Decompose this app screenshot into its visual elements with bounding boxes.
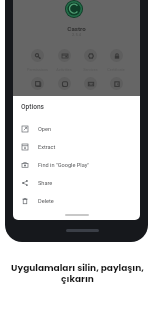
button[interactable]: Delete <box>13 192 140 210</box>
staticText: Activities <box>56 67 72 71</box>
button[interactable]: Share <box>13 174 140 192</box>
staticText: Signature <box>108 95 125 99</box>
staticText: Options <box>21 103 44 111</box>
staticText: Find in "Google Play" <box>38 162 90 169</box>
staticText: Share <box>38 180 53 187</box>
staticText: Resources <box>55 95 73 99</box>
staticText: Manifest <box>30 95 45 99</box>
button[interactable]: Services <box>77 49 103 71</box>
button[interactable]: Activities <box>51 49 77 71</box>
staticText: Strings <box>84 95 96 99</box>
button[interactable]: Permissions <box>24 49 51 71</box>
button[interactable]: Resources <box>51 77 77 99</box>
button[interactable]: Find in "Google Play" <box>13 156 140 174</box>
button[interactable]: Certificate <box>103 49 129 71</box>
button[interactable]: Signature <box>103 77 129 99</box>
staticText: Castro <box>13 25 140 32</box>
button[interactable]: Extract <box>13 138 140 156</box>
staticText: Open <box>38 126 52 133</box>
staticText: Extract <box>38 144 56 151</box>
button[interactable]: Open <box>13 120 140 138</box>
staticText: Delete <box>38 198 54 205</box>
button[interactable]: Manifest <box>24 77 51 99</box>
staticText: Uygulamaları silin, paylaşın, çıkarın <box>0 262 155 285</box>
button[interactable]: Strings <box>77 77 103 99</box>
